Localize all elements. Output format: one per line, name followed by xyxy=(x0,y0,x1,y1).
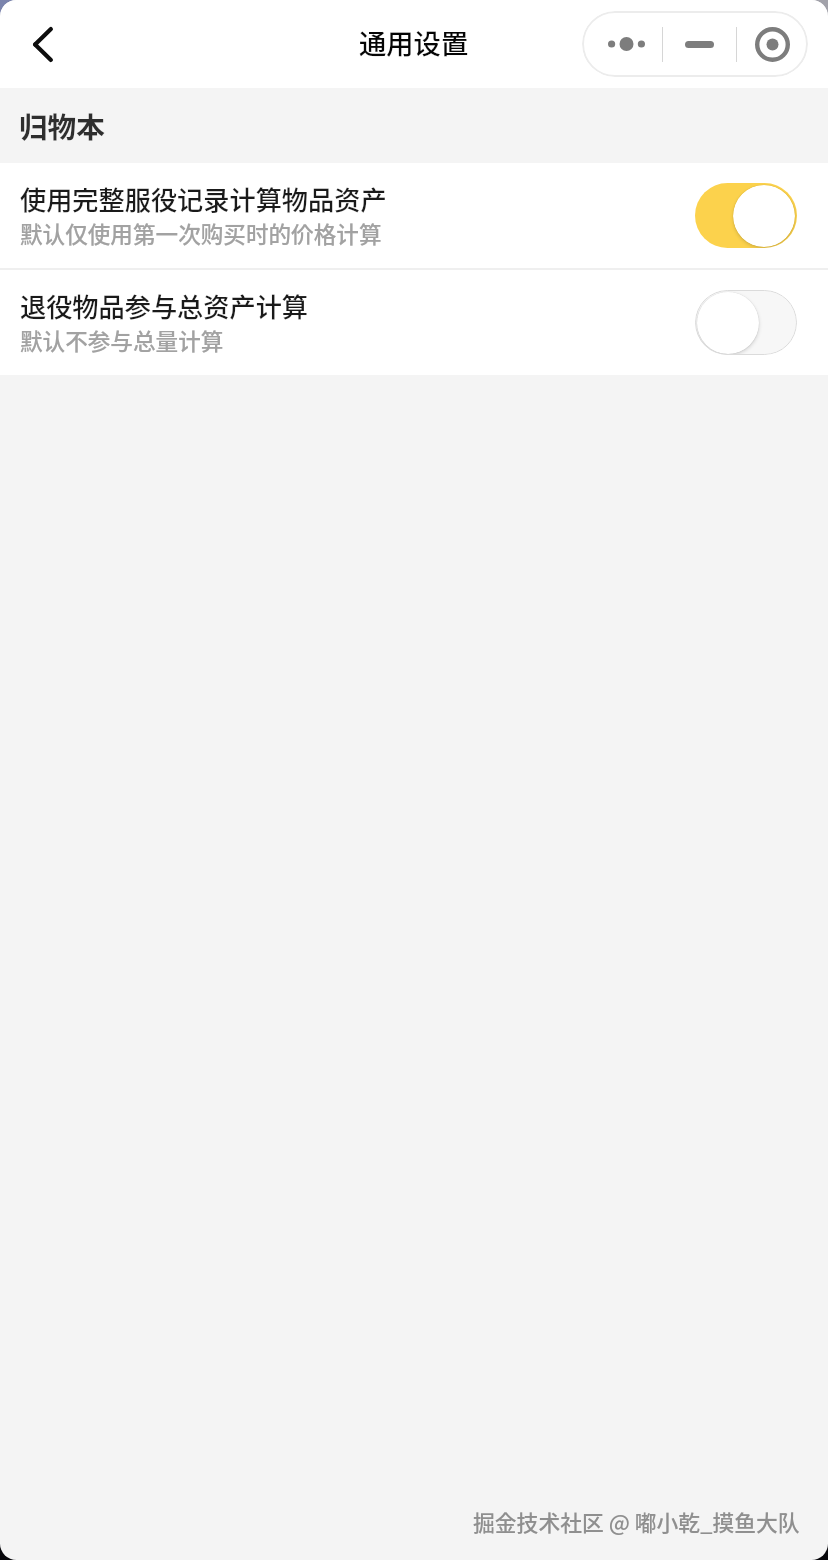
button[interactable]: 退役物品参与总资产计算 xyxy=(0,270,828,375)
button[interactable]: Close xyxy=(737,11,808,77)
staticText: 退役物品参与总资产计算 xyxy=(20,287,309,325)
button[interactable]: Toggle off xyxy=(695,290,797,355)
staticText: 默认不参与总量计算 xyxy=(20,324,224,357)
staticText: 默认仅使用第一次购买时的价格计算 xyxy=(20,217,382,250)
staticText: 使用完整服役记录计算物品资产 xyxy=(20,180,387,218)
button[interactable]: Minimize xyxy=(663,11,736,77)
button[interactable]: Back xyxy=(12,13,74,75)
staticText: 通用设置 xyxy=(359,22,469,62)
button[interactable]: 使用完整服役记录计算物品资产 xyxy=(0,163,828,268)
staticText: 归物本 xyxy=(19,105,105,146)
button[interactable]: Toggle on xyxy=(695,183,797,248)
button[interactable]: More xyxy=(582,11,662,77)
staticText: 掘金技术社区 @ 嘟小乾_摸鱼大队 xyxy=(473,1506,800,1538)
